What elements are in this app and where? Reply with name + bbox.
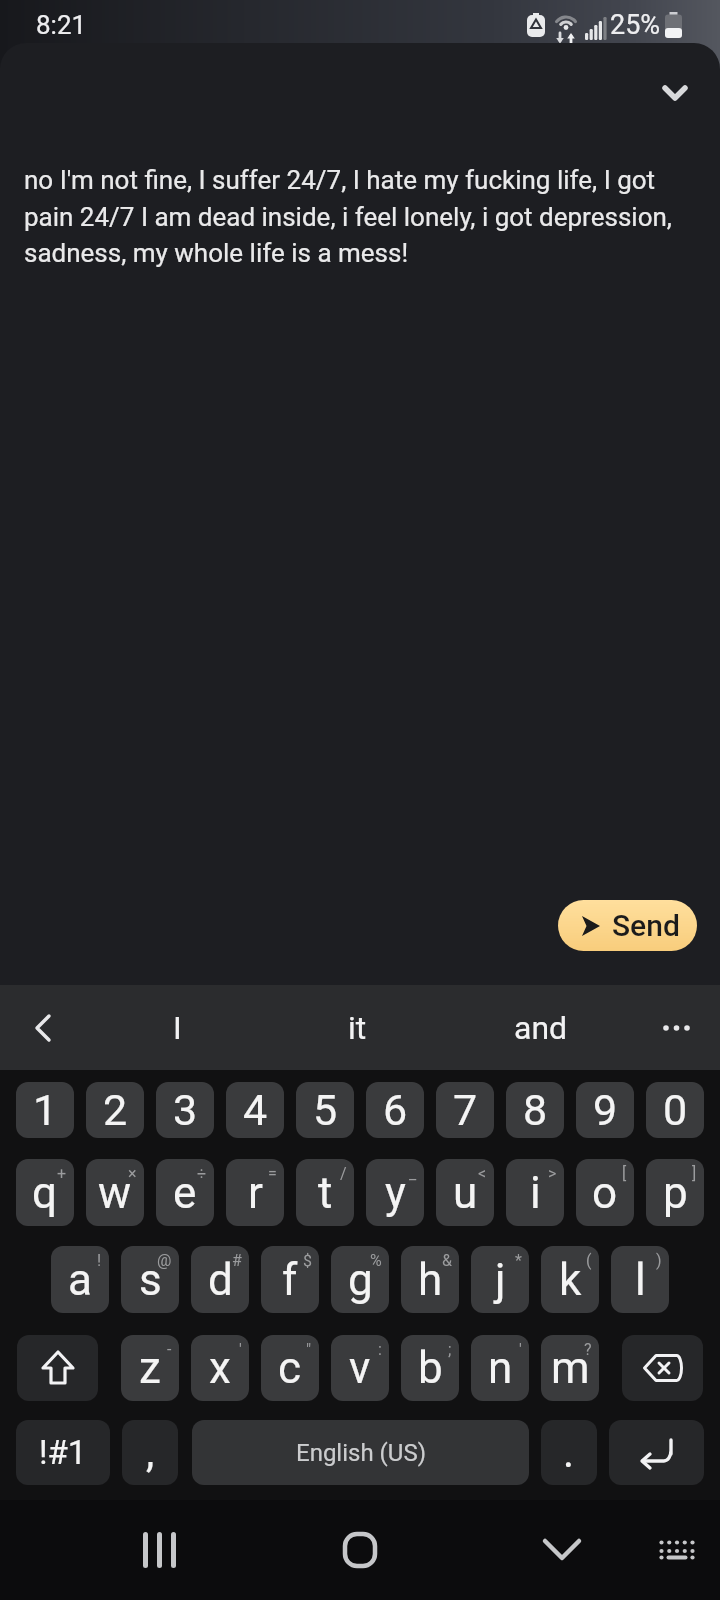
button[interactable]: n xyxy=(471,1335,529,1401)
staticText: n xyxy=(488,1342,513,1394)
button[interactable] xyxy=(652,73,698,113)
button[interactable]: h xyxy=(401,1246,459,1313)
button[interactable] xyxy=(645,1518,709,1582)
button[interactable]: 4 xyxy=(226,1082,284,1138)
staticText: x xyxy=(209,1342,231,1394)
staticText: _ xyxy=(409,1164,417,1183)
button[interactable] xyxy=(16,985,70,1070)
button[interactable]: u xyxy=(436,1159,494,1226)
button[interactable] xyxy=(17,1335,98,1401)
staticText: k xyxy=(559,1254,582,1306)
staticText: × xyxy=(128,1164,137,1183)
staticText: 9 xyxy=(593,1085,618,1135)
staticText: i xyxy=(530,1167,541,1219)
button[interactable] xyxy=(328,1518,392,1582)
staticText: d xyxy=(208,1254,233,1306)
button[interactable]: v xyxy=(331,1335,389,1401)
button[interactable] xyxy=(622,1335,703,1401)
staticText: " xyxy=(306,1340,312,1359)
staticText: 8:21 xyxy=(36,10,87,40)
button[interactable]: o xyxy=(576,1159,634,1226)
staticText: y xyxy=(385,1167,406,1219)
button[interactable]: Send xyxy=(558,900,697,951)
button[interactable]: 6 xyxy=(366,1082,424,1138)
button[interactable] xyxy=(609,1420,704,1485)
staticText: q xyxy=(32,1167,58,1219)
button[interactable] xyxy=(530,1518,594,1582)
staticText: Send xyxy=(612,908,680,943)
staticText: 2 xyxy=(103,1085,128,1135)
button[interactable]: w xyxy=(86,1159,144,1226)
staticText: ) xyxy=(656,1251,662,1270)
staticText: = xyxy=(268,1164,277,1183)
staticText: + xyxy=(57,1164,67,1183)
button[interactable]: , xyxy=(122,1420,178,1485)
button[interactable]: 3 xyxy=(156,1082,214,1138)
staticText: @ xyxy=(157,1251,172,1270)
button[interactable]: b xyxy=(401,1335,459,1401)
staticText: # xyxy=(232,1251,242,1270)
button[interactable]: . xyxy=(541,1420,597,1485)
button[interactable]: f xyxy=(261,1246,319,1313)
staticText: it xyxy=(348,1009,367,1047)
button[interactable]: c xyxy=(261,1335,319,1401)
staticText: $ xyxy=(303,1251,312,1270)
button[interactable]: t xyxy=(296,1159,354,1226)
staticText: 0 xyxy=(663,1085,688,1135)
button[interactable]: k xyxy=(541,1246,599,1313)
staticText: !#1 xyxy=(39,1433,87,1472)
button[interactable]: l xyxy=(611,1246,669,1313)
staticText: ' xyxy=(519,1340,522,1359)
staticText: o xyxy=(592,1167,618,1219)
staticText: 1 xyxy=(33,1085,58,1135)
staticText: [ xyxy=(622,1164,627,1183)
button[interactable]: e xyxy=(156,1159,214,1226)
staticText: g xyxy=(348,1254,373,1306)
button[interactable]: a xyxy=(51,1246,109,1313)
button[interactable] xyxy=(128,1518,192,1582)
staticText: u xyxy=(453,1167,478,1219)
button[interactable]: 8 xyxy=(506,1082,564,1138)
button[interactable]: m xyxy=(541,1335,599,1401)
button[interactable]: 1 xyxy=(16,1082,74,1138)
staticText: 4 xyxy=(243,1085,268,1135)
staticText: & xyxy=(442,1251,452,1270)
button[interactable]: d xyxy=(191,1246,249,1313)
button[interactable]: 2 xyxy=(86,1082,144,1138)
button[interactable]: z xyxy=(121,1335,179,1401)
staticText: h xyxy=(418,1254,443,1306)
staticText: s xyxy=(139,1254,162,1306)
button[interactable]: g xyxy=(331,1246,389,1313)
button[interactable]: q xyxy=(16,1159,74,1226)
staticText: l xyxy=(635,1254,646,1306)
button[interactable] xyxy=(650,985,704,1070)
button[interactable]: I xyxy=(117,985,237,1070)
staticText: e xyxy=(173,1167,197,1219)
button[interactable]: y xyxy=(366,1159,424,1226)
button[interactable]: p xyxy=(646,1159,704,1226)
button[interactable]: 7 xyxy=(436,1082,494,1138)
button[interactable]: !#1 xyxy=(16,1420,110,1485)
staticText: 5 xyxy=(313,1085,338,1135)
button[interactable]: j xyxy=(471,1246,529,1313)
staticText: ] xyxy=(692,1164,697,1183)
staticText: z xyxy=(139,1342,161,1394)
button[interactable]: it xyxy=(297,985,417,1070)
staticText: f xyxy=(282,1254,298,1306)
staticText: 3 xyxy=(173,1085,198,1135)
button[interactable]: English (US) xyxy=(192,1420,529,1485)
button[interactable]: 0 xyxy=(646,1082,704,1138)
staticText: p xyxy=(663,1167,688,1219)
button[interactable]: s xyxy=(121,1246,179,1313)
button[interactable]: i xyxy=(506,1159,564,1226)
staticText: ' xyxy=(239,1340,242,1359)
button[interactable]: 9 xyxy=(576,1082,634,1138)
staticText: m xyxy=(551,1342,590,1394)
staticText: 6 xyxy=(383,1085,408,1135)
button[interactable]: x xyxy=(191,1335,249,1401)
staticText: - xyxy=(167,1340,172,1359)
button[interactable]: r xyxy=(226,1159,284,1226)
staticText: and xyxy=(514,1009,568,1047)
button[interactable]: and xyxy=(481,985,601,1070)
button[interactable]: 5 xyxy=(296,1082,354,1138)
